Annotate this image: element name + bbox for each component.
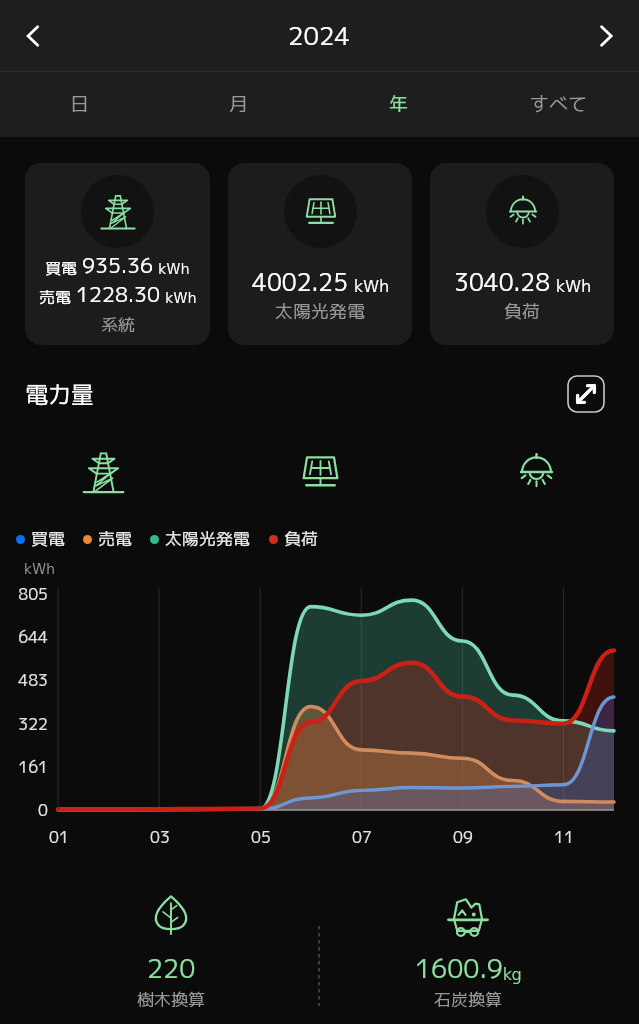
button[interactable]: Expand chart [567,375,605,413]
staticText: 805 [0,583,48,605]
staticText: 05 [251,826,271,848]
staticText: 太陽光発電 [275,299,365,324]
staticText: 644 [0,626,48,648]
staticText: 負荷 [284,527,318,551]
button[interactable]: すべて [479,72,639,137]
button[interactable]: 4002.25 [228,163,412,345]
staticText: 07 [352,826,372,848]
staticText: 負荷 [504,299,540,324]
staticText: kWh [551,274,591,298]
staticText: kg [503,962,522,986]
staticText: 3040.28 [454,265,551,298]
staticText: 03 [150,826,170,848]
staticText: 買電 [45,257,82,279]
staticText: 売電 [98,527,132,551]
button[interactable]: Next year [579,9,633,63]
staticText: 1600.9 [415,950,503,986]
staticText: 2024 [288,18,351,53]
staticText: 09 [453,826,473,848]
staticText: 322 [0,713,48,735]
staticText: kWh [154,258,190,279]
staticText: 935.36 [82,250,154,279]
button[interactable]: 3040.28 [430,163,614,345]
button[interactable]: 日 [0,72,159,137]
staticText: 太陽光発電 [165,527,250,551]
button[interactable]: 年 [319,72,479,137]
staticText: 買電 [31,527,65,551]
staticText: 483 [0,669,48,691]
staticText: 年 [389,91,409,118]
staticText: 01 [49,826,69,848]
staticText: 220 [147,950,196,986]
staticText: 161 [0,756,48,778]
button[interactable]: 1600.9 [323,860,613,1024]
staticText: 1228.30 [76,279,161,308]
button[interactable]: Previous year [6,9,60,63]
button[interactable]: 220 [26,860,316,1024]
staticText: 4002.25 [252,265,349,298]
staticText: 石炭換算 [434,988,502,1012]
staticText: 電力量 [25,378,94,410]
staticText: 11 [554,826,574,848]
staticText: 樹木換算 [137,988,205,1012]
staticText: kWh [349,274,389,298]
button[interactable]: 月 [159,72,319,137]
staticText: kWh [161,287,197,308]
staticText: 系統 [101,313,135,337]
staticText: 月 [229,91,249,118]
staticText: 売電 [39,286,76,308]
staticText: 0 [0,799,48,821]
staticText: 日 [70,91,90,118]
staticText: すべて [530,91,588,118]
button[interactable]: 買電 [25,163,210,345]
staticText: kWh [24,558,55,579]
